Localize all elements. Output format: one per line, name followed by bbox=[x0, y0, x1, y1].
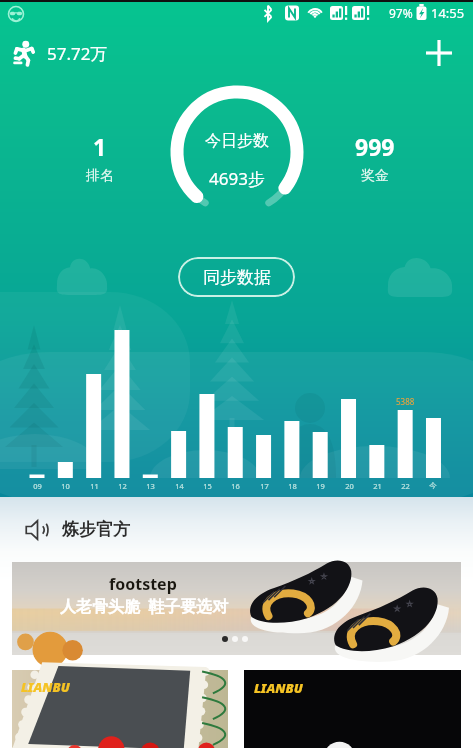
staticText: 5388 bbox=[396, 396, 415, 407]
staticText: 20 bbox=[345, 481, 354, 491]
button[interactable]: 炼步官方 bbox=[25, 497, 473, 562]
staticText: 09 bbox=[33, 481, 42, 491]
staticText: 14:55 bbox=[431, 4, 465, 22]
staticText: 人老骨头脆 鞋子要选对 bbox=[60, 595, 229, 617]
staticText: footstep bbox=[109, 573, 177, 595]
staticText: 同步数据 bbox=[203, 267, 271, 288]
staticText: 17 bbox=[260, 481, 269, 491]
staticText: 21 bbox=[373, 481, 382, 491]
staticText: 12 bbox=[118, 481, 127, 491]
staticText: 15 bbox=[203, 481, 212, 491]
staticText: 16 bbox=[231, 481, 240, 491]
staticText: 10 bbox=[61, 481, 70, 491]
staticText: 14 bbox=[175, 481, 184, 491]
button[interactable]: LIANBU bbox=[244, 670, 461, 748]
staticText: 排名 bbox=[86, 167, 114, 185]
staticText: 今日步数 bbox=[205, 131, 269, 151]
staticText: LIANBU bbox=[254, 679, 303, 697]
staticText: 97% bbox=[389, 5, 413, 21]
staticText: 今 bbox=[429, 481, 437, 490]
button[interactable]: Add bbox=[419, 33, 459, 73]
staticText: 22 bbox=[401, 481, 410, 491]
staticText: 奖金 bbox=[361, 167, 389, 185]
button[interactable]: 同步数据 bbox=[178, 257, 295, 297]
staticText: 57.72万 bbox=[47, 42, 108, 65]
staticText: LIANBU bbox=[21, 678, 70, 696]
staticText: 1 bbox=[93, 131, 107, 162]
button[interactable]: LIANBU bbox=[12, 670, 228, 748]
staticText: 999 bbox=[355, 131, 395, 162]
staticText: 18 bbox=[288, 481, 297, 491]
staticText: 19 bbox=[316, 481, 325, 491]
staticText: 炼步官方 bbox=[62, 519, 130, 540]
staticText: 13 bbox=[146, 481, 155, 491]
staticText: 11 bbox=[90, 481, 99, 491]
button[interactable]: footstep bbox=[12, 562, 461, 655]
staticText: 4693步 bbox=[209, 167, 265, 190]
